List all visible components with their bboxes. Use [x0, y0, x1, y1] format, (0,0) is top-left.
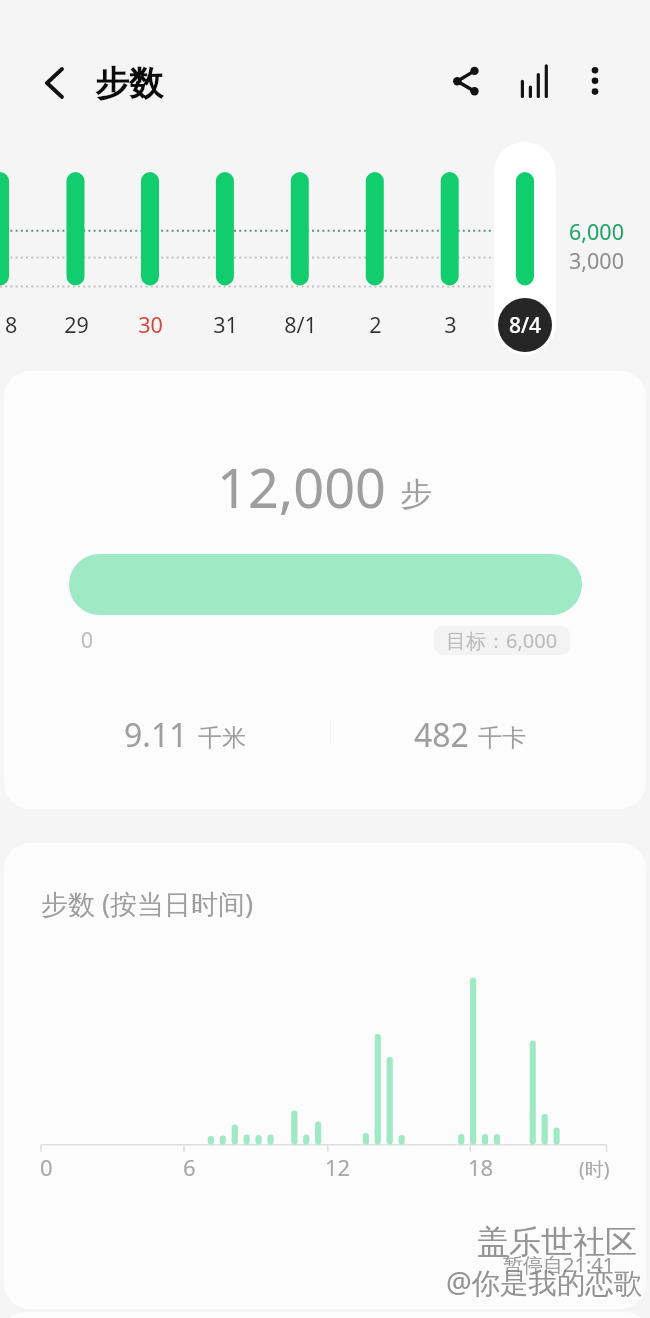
staticText: 盖乐世社区: [478, 1223, 638, 1263]
button[interactable]: 8/4: [498, 298, 552, 352]
staticText: 29: [64, 310, 89, 339]
staticText: 3,000: [569, 246, 624, 275]
staticText: 8: [5, 310, 18, 339]
staticText: 31: [213, 310, 238, 339]
staticText: 12,000: [217, 450, 386, 524]
staticText: 暂停自21:41: [503, 1251, 615, 1278]
staticText: 千米: [198, 723, 246, 753]
button[interactable]: [494, 142, 556, 355]
staticText: 2: [369, 310, 382, 339]
staticText: 9.11: [124, 713, 188, 757]
staticText: 步数: [95, 62, 163, 105]
staticText: 千卡: [478, 723, 526, 753]
staticText: @你是我的恋歌: [446, 1263, 643, 1302]
staticText: 0: [81, 626, 94, 655]
staticText: (时): [579, 1156, 610, 1182]
staticText: 盖乐世社区: [477, 1222, 637, 1262]
staticText: 30: [138, 310, 163, 339]
staticText: 6: [183, 1152, 196, 1182]
button[interactable]: [4, 371, 646, 809]
button[interactable]: Statistics: [506, 53, 562, 109]
staticText: 暂停自21:41: [504, 1252, 616, 1279]
button[interactable]: 步数: [95, 62, 163, 105]
staticText: 8/4: [509, 311, 542, 340]
staticText: 18: [468, 1152, 494, 1182]
staticText: @你是我的恋歌: [447, 1265, 644, 1304]
staticText: 步: [400, 474, 432, 514]
staticText: 步数 (按当日时间): [41, 885, 254, 922]
staticText: 12: [325, 1152, 351, 1182]
button[interactable]: [4, 843, 646, 1309]
button[interactable]: Back: [26, 55, 82, 111]
staticText: 482: [414, 713, 469, 757]
staticText: 8/1: [284, 310, 317, 339]
staticText: 3: [444, 310, 457, 339]
button[interactable]: Share: [438, 53, 494, 109]
staticText: 0: [40, 1152, 53, 1182]
button[interactable]: More options: [567, 53, 623, 109]
staticText: 目标：6,000: [446, 627, 558, 654]
staticText: 6,000: [569, 217, 624, 246]
